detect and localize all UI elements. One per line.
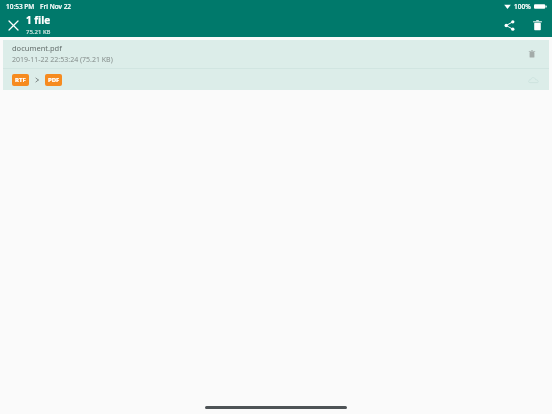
button[interactable]: PDF [45,74,62,86]
staticText: RTF [15,76,26,84]
staticText: 1 file [26,13,51,27]
staticText: 10:53 PM [6,2,35,11]
staticText: 2019-11-22 22:53:24 (75.21 KB) [12,55,113,65]
staticText: document.pdf [12,43,62,53]
button[interactable]: RTF [12,74,29,86]
staticText: 100% [514,2,531,11]
button[interactable]: Delete file [523,45,541,63]
staticText: PDF [48,76,60,84]
staticText: 75.21 KB [26,28,51,36]
staticText: Fri Nov 22 [40,2,72,11]
button[interactable]: Close [2,14,24,36]
button[interactable]: Delete [526,14,548,36]
button[interactable]: Share [498,14,520,36]
button[interactable]: document.pdf [3,40,549,90]
